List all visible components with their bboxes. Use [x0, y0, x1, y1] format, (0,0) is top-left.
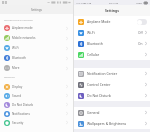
button[interactable]: Airplane Mode: [74, 16, 150, 27]
button[interactable]: Airplane mode: [0, 23, 73, 33]
button[interactable]: Bluetooth: [0, 53, 73, 63]
button[interactable]: Do Not Disturb: [0, 100, 73, 109]
staticText: 100%: [136, 1, 143, 4]
staticText: Off: [138, 31, 143, 35]
staticText: Mobile networks: [12, 36, 36, 40]
button[interactable]: Notifications: [0, 109, 73, 118]
staticText: Bluetooth: [87, 41, 103, 46]
staticText: Do Not Disturb: [12, 103, 34, 107]
staticText: Do Not Disturb: [87, 93, 111, 98]
staticText: Security: [12, 121, 24, 125]
staticText: ••••• AT&T LTE: [76, 1, 92, 4]
staticText: Notification Center: [87, 71, 118, 76]
staticText: Cellular: [87, 52, 100, 57]
button[interactable]: Do Not Disturb: [74, 90, 150, 101]
staticText: Bluetooth: [12, 56, 26, 60]
staticText: PERSONAL: [4, 76, 16, 79]
button[interactable]: Wi-Fi: [74, 27, 150, 38]
button[interactable]: Sound: [0, 91, 73, 100]
button[interactable]: More: [0, 63, 73, 73]
staticText: Wi-Fi: [87, 30, 95, 35]
staticText: Airplane Mode: [87, 19, 111, 24]
staticText: Settings: [105, 8, 119, 13]
staticText: Sound: [12, 94, 22, 98]
staticText: Airplane mode: [12, 26, 33, 30]
button[interactable]: Notification Center: [74, 68, 150, 79]
staticText: General: [87, 110, 100, 115]
staticText: Notifications: [12, 112, 30, 116]
button[interactable]: Bluetooth: [74, 38, 150, 49]
button[interactable]: Wallpapers & Brightness: [74, 118, 150, 129]
button[interactable]: Control Center: [74, 79, 150, 90]
button[interactable]: Cellular: [74, 49, 150, 60]
button[interactable]: Security: [0, 118, 73, 127]
staticText: Wallpapers & Brightness: [87, 121, 127, 126]
staticText: On: [138, 42, 143, 46]
staticText: Control Center: [87, 82, 111, 87]
staticText: Wi-Fi: [12, 46, 19, 50]
button[interactable]: Mobile networks: [0, 33, 73, 43]
staticText: CONNECTIONS & NETWORK: [4, 19, 33, 22]
button[interactable]: Display: [0, 82, 73, 91]
button[interactable]: General: [74, 107, 150, 118]
staticText: 9:41 AM: [109, 1, 119, 4]
button[interactable]: Wi-Fi: [0, 43, 73, 53]
staticText: More: [12, 66, 20, 70]
staticText: Settings: [31, 8, 42, 12]
staticText: Display: [12, 85, 23, 89]
